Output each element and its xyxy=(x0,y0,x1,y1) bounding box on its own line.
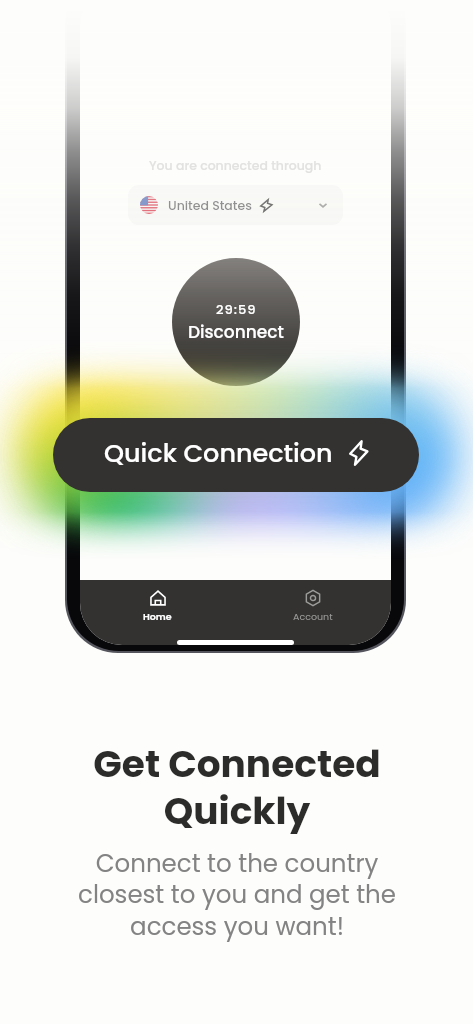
button[interactable]: 29:59 xyxy=(172,258,300,386)
staticText: 29:59 xyxy=(216,300,257,318)
staticText: Account xyxy=(293,610,333,623)
staticText: Quick Connection xyxy=(104,435,333,471)
staticText: United States xyxy=(168,197,252,214)
button[interactable]: Quick Connection xyxy=(53,418,419,492)
staticText: Connect to the country closest to you an… xyxy=(78,846,396,944)
staticText: You are connected through xyxy=(149,157,322,174)
staticText: Disconnect xyxy=(188,320,284,344)
button[interactable]: United States xyxy=(128,185,343,225)
staticText: Home xyxy=(143,610,172,623)
button[interactable]: Account xyxy=(235,580,391,628)
staticText: Get Connected Quickly xyxy=(93,738,381,837)
button[interactable]: Home xyxy=(80,580,235,628)
